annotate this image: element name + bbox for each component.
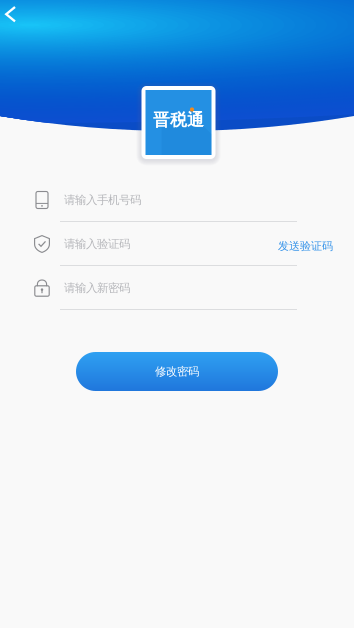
staticText: 请输入新密码 (64, 281, 130, 295)
button[interactable]: 修改密码 (76, 352, 278, 391)
button[interactable]: Back (0, 0, 30, 30)
staticText: 修改密码 (155, 364, 199, 379)
staticText: 发送验证码 (278, 239, 333, 253)
staticText: 晋税通 (153, 109, 204, 131)
staticText: 请输入手机号码 (64, 193, 141, 207)
staticText: 请输入验证码 (64, 237, 130, 251)
button[interactable]: 发送验证码 (278, 234, 333, 258)
